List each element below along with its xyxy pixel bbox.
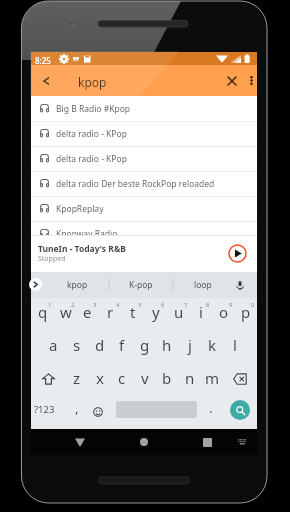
button[interactable]: z <box>65 364 88 397</box>
button[interactable]: . <box>199 397 223 430</box>
staticText: r <box>107 302 114 322</box>
staticText: e <box>83 302 92 322</box>
staticText: loop <box>194 279 212 291</box>
button[interactable]: Play <box>226 242 248 264</box>
button[interactable]: g <box>133 331 156 364</box>
staticText: , <box>75 399 79 417</box>
button[interactable]: v <box>133 364 156 397</box>
button[interactable]: i <box>189 298 212 331</box>
staticText: ?123 <box>34 403 55 416</box>
button[interactable]: delta radio - KPop <box>31 146 257 171</box>
button[interactable]: s <box>65 331 88 364</box>
button[interactable]: l <box>223 331 246 364</box>
staticText: l <box>233 335 237 355</box>
button[interactable]: Search <box>223 397 257 430</box>
button[interactable]: Switch keyboard <box>227 429 257 455</box>
staticText: Big B Radio #Kpop <box>56 103 131 115</box>
staticText: v <box>141 368 149 388</box>
button[interactable]: , <box>64 397 90 430</box>
button[interactable]: o <box>212 298 235 331</box>
staticText: b <box>162 368 172 388</box>
staticText: f <box>119 335 125 355</box>
staticText: u <box>174 302 184 322</box>
staticText: 8 <box>206 301 210 309</box>
button[interactable]: Show more suggestions <box>29 278 42 291</box>
button[interactable]: Space <box>107 395 203 428</box>
staticText: y <box>152 302 160 322</box>
button[interactable]: K-pop <box>109 272 173 298</box>
button[interactable]: x <box>88 364 111 397</box>
staticText: 6 <box>161 301 165 309</box>
button[interactable]: Back <box>32 65 60 96</box>
button[interactable]: Clear search <box>219 65 244 96</box>
staticText: kpop <box>78 74 107 90</box>
button[interactable]: ?123 <box>31 397 58 430</box>
button[interactable]: p <box>234 298 257 331</box>
staticText: 1 <box>48 301 52 309</box>
button[interactable]: q <box>31 298 54 331</box>
staticText: w <box>60 302 72 322</box>
staticText: j <box>188 335 192 355</box>
button[interactable]: kpop <box>45 272 109 298</box>
button[interactable]: Recent apps <box>187 429 227 455</box>
staticText: i <box>199 302 203 322</box>
staticText: c <box>118 368 126 388</box>
button[interactable]: m <box>201 364 224 397</box>
button[interactable]: loop <box>173 272 233 298</box>
button[interactable]: h <box>155 331 178 364</box>
staticText: KpopReplay <box>56 203 104 215</box>
button[interactable]: a <box>42 331 65 364</box>
button[interactable]: k <box>201 331 224 364</box>
button[interactable]: e <box>76 298 99 331</box>
button[interactable]: Back <box>60 429 100 455</box>
staticText: TuneIn - Today's R&B <box>38 243 126 255</box>
button[interactable]: delta radio Der beste RockPop reloaded <box>31 171 257 196</box>
button[interactable]: d <box>88 331 111 364</box>
staticText: k <box>208 335 217 355</box>
staticText: t <box>130 302 136 322</box>
button[interactable]: Emoji <box>87 397 109 430</box>
staticText: kpop <box>67 279 88 291</box>
staticText: a <box>49 335 58 355</box>
button[interactable]: Big B Radio #Kpop <box>31 96 257 121</box>
button[interactable]: n <box>178 364 201 397</box>
button[interactable]: More options <box>242 65 261 96</box>
button[interactable]: TuneIn - Today's R&B <box>31 235 257 272</box>
staticText: p <box>241 302 251 322</box>
button[interactable]: Home <box>124 429 164 455</box>
button[interactable]: Voice input <box>226 272 254 298</box>
staticText: 5 <box>138 301 142 309</box>
staticText: x <box>96 368 104 388</box>
button[interactable]: w <box>54 298 77 331</box>
button[interactable]: delta radio - KPop <box>31 121 257 146</box>
button[interactable]: u <box>167 298 190 331</box>
staticText: 9 <box>229 301 233 309</box>
staticText: o <box>219 302 229 322</box>
staticText: 0 <box>251 301 255 309</box>
button[interactable]: KpopReplay <box>31 196 257 221</box>
staticText: . <box>209 399 213 417</box>
button[interactable]: Backspace <box>223 364 257 397</box>
staticText: 8:25 <box>35 55 51 66</box>
staticText: delta radio - KPop <box>56 128 127 140</box>
staticText: K-pop <box>129 279 153 291</box>
button[interactable]: c <box>110 364 133 397</box>
staticText: 3 <box>93 301 97 309</box>
staticText: Stopped <box>38 254 66 264</box>
button[interactable]: r <box>99 298 122 331</box>
staticText: 4 <box>116 301 120 309</box>
button[interactable]: f <box>110 331 133 364</box>
staticText: 2 <box>71 301 75 309</box>
button[interactable]: Shift <box>31 364 65 397</box>
staticText: delta radio Der beste RockPop reloaded <box>56 178 215 190</box>
button[interactable]: t <box>121 298 144 331</box>
staticText: n <box>185 368 195 388</box>
staticText: z <box>73 368 81 388</box>
staticText: Kpopway Radio <box>56 228 118 240</box>
button[interactable]: j <box>178 331 201 364</box>
button[interactable]: Kpopway Radio <box>31 221 257 246</box>
button[interactable]: b <box>155 364 178 397</box>
button[interactable]: y <box>144 298 167 331</box>
staticText: g <box>140 335 150 355</box>
staticText: h <box>162 335 172 355</box>
